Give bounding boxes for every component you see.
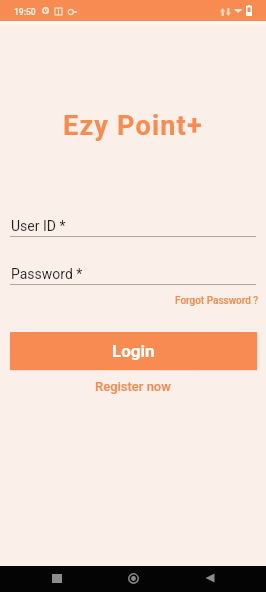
staticText: Password *: [11, 266, 83, 282]
staticText: Ezy Point+: [63, 110, 203, 142]
button[interactable]: Recent apps: [34, 565, 80, 591]
button[interactable]: Register now: [89, 377, 177, 396]
button[interactable]: Forgot Password ?: [175, 293, 266, 309]
button[interactable]: Login: [10, 332, 257, 370]
button[interactable]: Home: [110, 565, 156, 591]
button[interactable]: User ID *: [10, 218, 256, 237]
staticText: 19:50: [14, 7, 36, 17]
button[interactable]: Password *: [10, 266, 256, 285]
staticText: Login: [112, 341, 155, 361]
button[interactable]: Back: [187, 565, 233, 591]
staticText: User ID *: [11, 218, 66, 234]
